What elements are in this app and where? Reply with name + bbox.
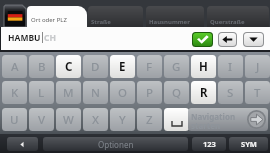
button[interactable]: W (56, 108, 81, 131)
staticText: starten (191, 120, 221, 131)
button[interactable]: Optionen (43, 137, 188, 151)
staticText: R (200, 85, 208, 101)
staticText: D (91, 59, 100, 75)
staticText: Hausnummer (149, 18, 190, 26)
staticText: Y (119, 112, 126, 128)
staticText: L (38, 85, 45, 101)
staticText: A (11, 59, 19, 75)
staticText: CH (44, 32, 56, 44)
button[interactable]: Leertaste (164, 108, 189, 131)
staticText: B (38, 59, 46, 75)
staticText: Navigation (191, 111, 236, 122)
button[interactable]: Hausnummer (146, 6, 204, 27)
button[interactable]: B (29, 55, 54, 78)
button[interactable]: S (218, 81, 243, 104)
staticText: J (256, 59, 260, 75)
staticText: I (228, 59, 233, 75)
staticText: Optionen (98, 139, 134, 150)
staticText: H (199, 59, 208, 75)
staticText: 123 (203, 139, 216, 149)
button[interactable]: Navigation (188, 108, 268, 131)
staticText: Z (146, 112, 153, 128)
button[interactable]: N (83, 81, 108, 104)
button[interactable]: K (2, 81, 27, 104)
staticText: K (11, 85, 19, 101)
button[interactable]: Querstraße (207, 6, 269, 27)
staticText: G (172, 59, 181, 75)
staticText: C (65, 59, 73, 75)
button[interactable]: M (56, 81, 81, 104)
button[interactable]: P (137, 81, 162, 104)
button[interactable]: H (191, 55, 216, 78)
button[interactable]: J (245, 55, 270, 78)
staticText: V (38, 112, 46, 128)
button[interactable]: T (245, 81, 270, 104)
staticText: SYM (241, 139, 257, 149)
button[interactable]: U (2, 108, 27, 131)
staticText: HAMBU (8, 32, 41, 44)
button[interactable]: F (137, 55, 162, 78)
staticText: O (118, 85, 128, 101)
button[interactable]: I (218, 55, 243, 78)
staticText: P (146, 85, 154, 101)
button[interactable]: Bestaetigen (192, 32, 213, 47)
button[interactable]: Zeichen loeschen (218, 32, 237, 47)
staticText: Q (172, 85, 182, 101)
staticText: T (254, 85, 261, 101)
staticText: N (91, 85, 100, 101)
staticText: Straße (91, 18, 111, 26)
button[interactable]: Zurueck (7, 137, 38, 151)
staticText: X (92, 112, 100, 128)
button[interactable]: Z (137, 108, 162, 131)
button[interactable]: R (191, 81, 216, 104)
staticText: W (63, 112, 74, 128)
staticText: Ort oder PLZ (31, 16, 67, 24)
button[interactable]: D (83, 55, 108, 78)
button[interactable]: Liste oeffnen (243, 32, 264, 47)
button[interactable]: 123 (192, 137, 226, 151)
staticText: F (146, 59, 153, 75)
button[interactable]: L (29, 81, 54, 104)
button[interactable]: O (110, 81, 135, 104)
button[interactable]: E (110, 55, 135, 78)
button[interactable]: Land waehlen (4, 5, 26, 27)
button[interactable]: Y (110, 108, 135, 131)
button[interactable]: V (29, 108, 54, 131)
button[interactable]: Straße (88, 6, 143, 27)
staticText: M (63, 85, 74, 101)
button[interactable]: Q (164, 81, 189, 104)
staticText: E (119, 59, 126, 75)
button[interactable]: C (56, 55, 81, 78)
button[interactable]: SYM (229, 137, 268, 151)
button[interactable]: X (83, 108, 108, 131)
staticText: S (227, 85, 234, 101)
button[interactable]: A (2, 55, 27, 78)
staticText: U (10, 112, 19, 128)
button[interactable]: G (164, 55, 189, 78)
button[interactable]: Ort oder PLZ (27, 6, 87, 27)
staticText: Querstraße (210, 18, 245, 26)
